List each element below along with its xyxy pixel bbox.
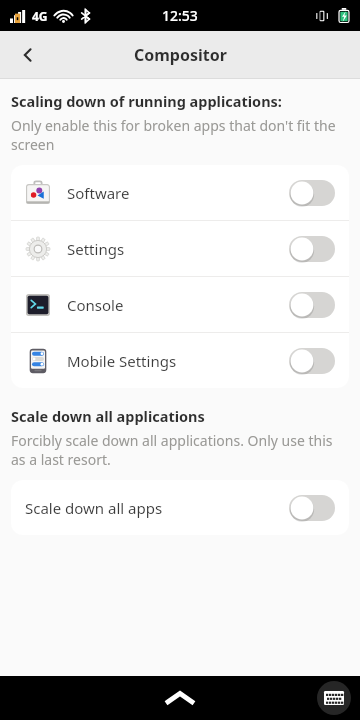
staticText: 4G	[32, 8, 48, 24]
staticText: Scale down all apps	[25, 498, 289, 518]
staticText: Software	[67, 183, 289, 203]
button[interactable]: Mobile Settings	[11, 333, 349, 388]
button[interactable]: Console	[11, 277, 349, 332]
staticText: Only enable this for broken apps that do…	[11, 116, 349, 154]
button[interactable]: Settings	[11, 221, 349, 276]
staticText: Forcibly scale down all applications. On…	[11, 431, 349, 469]
staticText: Mobile Settings	[67, 351, 289, 371]
button[interactable]: Keyboard	[317, 681, 351, 715]
button[interactable]: Back	[8, 35, 48, 75]
button[interactable]: Show apps	[152, 676, 208, 720]
staticText: Scale down all applications	[11, 406, 205, 426]
staticText: Settings	[67, 239, 289, 259]
staticText: Scaling down of running applications:	[11, 91, 282, 111]
button[interactable]: Software	[11, 165, 349, 220]
staticText: Compositor	[134, 44, 227, 66]
staticText: 12:53	[162, 6, 198, 25]
staticText: Console	[67, 295, 289, 315]
button[interactable]: Scale down all apps	[11, 480, 349, 535]
